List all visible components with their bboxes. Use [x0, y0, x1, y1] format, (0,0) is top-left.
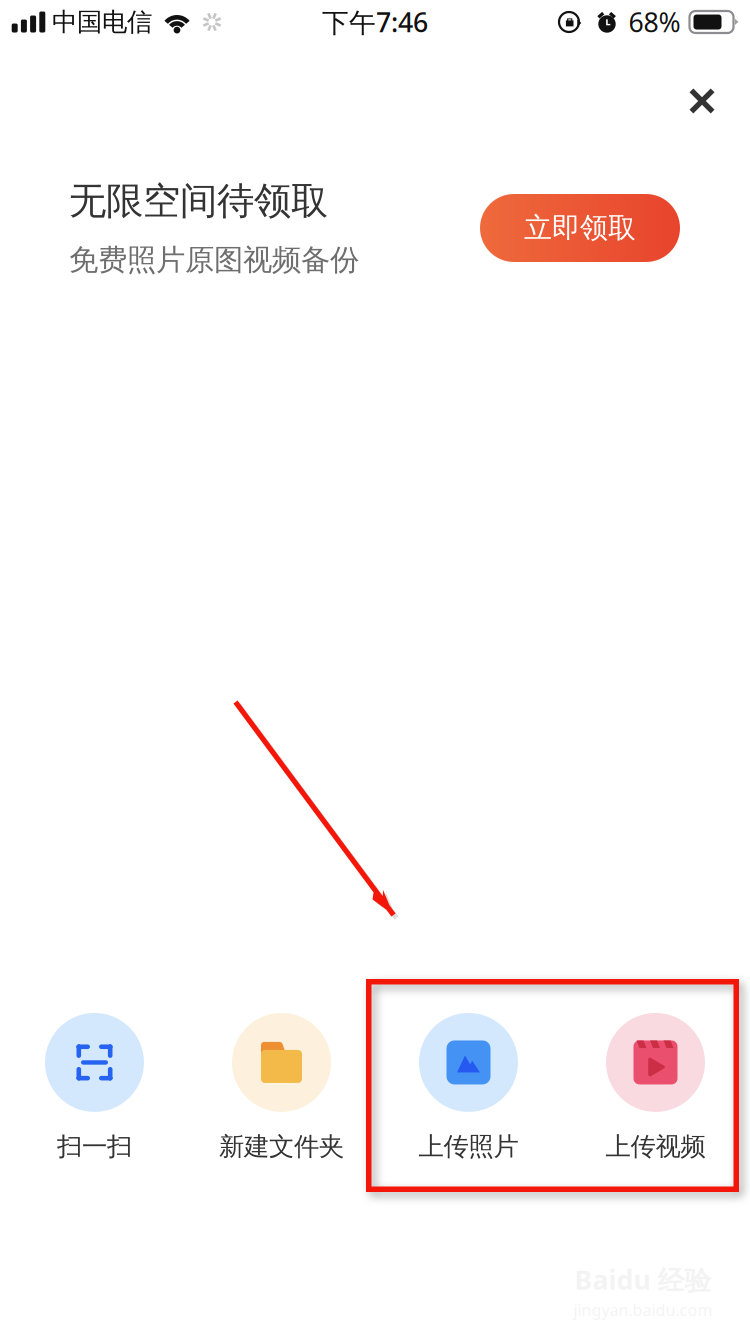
staticText: 无限空间待领取	[69, 178, 328, 224]
staticText: 下午7:46	[322, 4, 428, 40]
staticText: 新建文件夹	[219, 1131, 344, 1162]
staticText: 上传照片	[418, 1131, 518, 1162]
button[interactable]: 关闭	[671, 70, 732, 131]
button[interactable]: 新建文件夹	[188, 1013, 375, 1167]
staticText: 扫一扫	[57, 1131, 132, 1162]
staticText: 上传视频	[605, 1131, 705, 1162]
staticText: 免费照片原图视频备份	[69, 242, 359, 278]
staticText: jingyan.baidu.com	[573, 1299, 712, 1320]
staticText: Baidu 经验	[574, 1262, 711, 1297]
button[interactable]: 扫一扫	[1, 1013, 188, 1167]
button[interactable]: 上传视频	[562, 1013, 749, 1167]
button[interactable]: 上传照片	[375, 1013, 562, 1167]
staticText: 68%	[628, 4, 680, 40]
staticText: 立即领取	[524, 211, 636, 245]
staticText: 中国电信	[52, 6, 152, 37]
button[interactable]: 立即领取	[480, 194, 680, 262]
